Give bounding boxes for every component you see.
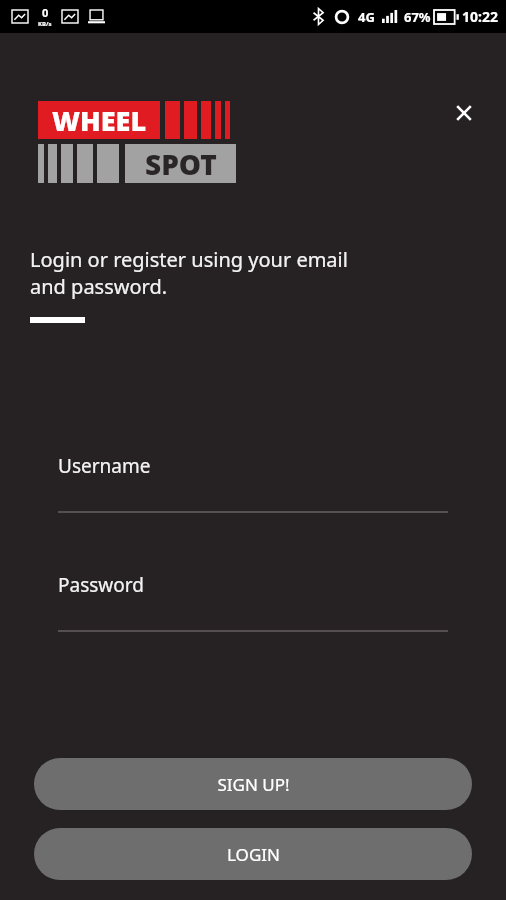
staticText: Password xyxy=(58,572,144,598)
staticText: LOGIN xyxy=(227,843,280,866)
staticText: KB/s xyxy=(38,20,52,28)
staticText: 0 xyxy=(42,5,49,20)
button[interactable]: LOGIN xyxy=(34,828,472,880)
staticText: 10:22 xyxy=(462,7,498,26)
staticText: 67% xyxy=(404,8,431,26)
staticText: Username xyxy=(58,453,151,479)
staticText: 4G xyxy=(358,8,375,26)
button[interactable]: SIGN UP! xyxy=(34,758,472,810)
button[interactable]: Username xyxy=(58,453,448,513)
staticText: WHEEL xyxy=(52,102,147,139)
button[interactable]: Password xyxy=(58,572,448,632)
staticText: Login or register using your email and p… xyxy=(30,246,348,300)
button[interactable]: Close xyxy=(440,89,488,137)
staticText: SIGN UP! xyxy=(217,773,290,796)
staticText: SPOT xyxy=(145,145,217,183)
